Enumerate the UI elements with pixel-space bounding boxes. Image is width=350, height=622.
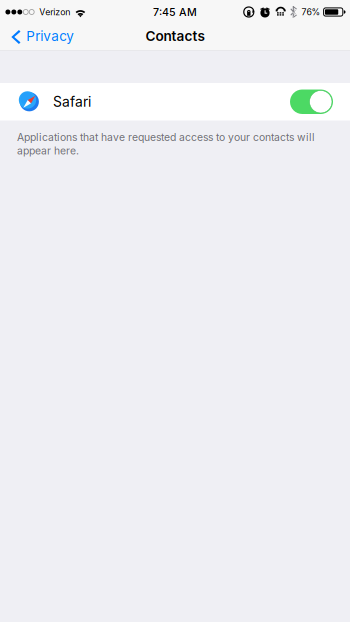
- staticText: Contacts: [145, 28, 204, 44]
- staticText: 76%: [302, 7, 321, 17]
- staticText: Verizon: [39, 7, 70, 17]
- button[interactable]: Safari: [0, 83, 350, 120]
- staticText: Privacy: [26, 28, 74, 44]
- staticText: 7:45 AM: [153, 5, 197, 18]
- staticText: Applications that have requested access …: [17, 131, 315, 157]
- staticText: Safari: [53, 93, 91, 110]
- button[interactable]: Privacy: [0, 24, 82, 50]
